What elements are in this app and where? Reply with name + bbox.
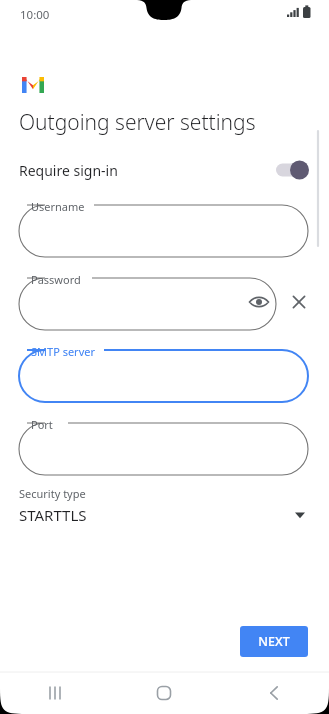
staticText: Port (31, 417, 53, 432)
button[interactable]: Port (19, 423, 308, 475)
button[interactable]: Username (19, 205, 308, 257)
button[interactable]: Show password (246, 289, 272, 315)
staticText: Security type (19, 486, 86, 501)
staticText: Outgoing server settings (19, 108, 256, 137)
button[interactable]: Back (219, 672, 329, 714)
button[interactable]: Require sign-in (0, 152, 329, 188)
staticText: NEXT (258, 633, 290, 650)
staticText: 10:00 (20, 7, 50, 23)
staticText: STARTTLS (19, 505, 87, 525)
button[interactable]: Recents (0, 672, 109, 714)
button[interactable]: Password (19, 278, 276, 330)
button[interactable]: SMTP server (19, 350, 308, 402)
staticText: Password (31, 272, 81, 287)
staticText: SMTP server (31, 344, 95, 359)
staticText: Username (31, 199, 85, 214)
button[interactable]: Security type (19, 486, 308, 532)
staticText: Require sign-in (19, 161, 118, 180)
button[interactable]: Home (109, 672, 219, 714)
button[interactable]: Clear password (288, 291, 310, 313)
button[interactable]: NEXT (240, 626, 308, 657)
